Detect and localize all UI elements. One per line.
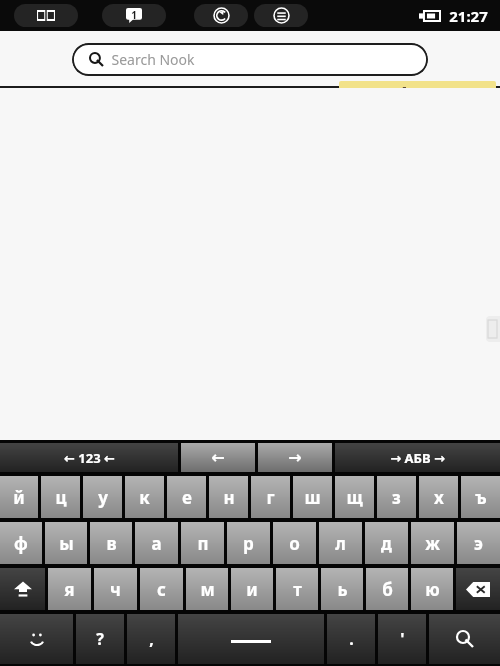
button[interactable]: п [181, 522, 224, 564]
button[interactable]: Notifications [102, 4, 166, 27]
staticText: . [349, 628, 354, 650]
button[interactable]: ← [181, 443, 255, 472]
staticText: 21:27 [449, 6, 488, 26]
button[interactable]: ы [45, 522, 87, 564]
staticText: ga [342, 81, 368, 110]
button[interactable]: Space [178, 614, 324, 664]
staticText: ? [96, 628, 104, 650]
staticText: н [223, 486, 235, 509]
button[interactable]: о [273, 522, 316, 564]
staticText: ы [59, 532, 74, 555]
staticText: в [106, 532, 117, 555]
button[interactable]: е [167, 476, 206, 518]
button[interactable]: . [327, 614, 375, 664]
button[interactable]: → АБВ → [335, 443, 500, 472]
button[interactable]: Emoji [0, 614, 73, 664]
button[interactable]: ъ [461, 476, 500, 518]
button[interactable]: Library [14, 4, 78, 27]
button[interactable]: б [366, 568, 408, 610]
staticText: ь [337, 578, 348, 601]
staticText: э [474, 532, 483, 555]
button[interactable]: ф [0, 522, 42, 564]
staticText: gadget.com [368, 81, 493, 110]
staticText: ъ [475, 486, 487, 509]
staticText: ← 123 ← [64, 449, 115, 467]
staticText: ж [425, 532, 440, 555]
button[interactable]: м [186, 568, 228, 610]
button[interactable]: х [419, 476, 458, 518]
staticText: у [98, 486, 108, 509]
staticText: Search Nook [111, 50, 195, 69]
staticText: я [64, 578, 75, 601]
button[interactable]: Shift [0, 568, 45, 610]
staticText: а [151, 532, 162, 555]
button[interactable]: ч [94, 568, 137, 610]
staticText: ю [425, 578, 440, 601]
button[interactable]: д [365, 522, 408, 564]
button[interactable]: л [319, 522, 362, 564]
staticText: 1 [131, 8, 137, 22]
button[interactable]: я [48, 568, 91, 610]
staticText: о [289, 532, 300, 555]
button[interactable]: ь [321, 568, 363, 610]
button[interactable]: , [127, 614, 175, 664]
staticText: щ [346, 486, 363, 509]
button[interactable]: Menu [254, 4, 308, 27]
button[interactable]: и [231, 568, 273, 610]
staticText: ш [304, 486, 321, 509]
button[interactable]: ← 123 ← [0, 443, 178, 472]
staticText: т [293, 578, 302, 601]
staticText: д [381, 532, 392, 555]
staticText: б [382, 578, 393, 601]
staticText: м [200, 578, 215, 601]
staticText: → АБВ → [390, 449, 445, 467]
button[interactable]: щ [335, 476, 374, 518]
staticText: е [182, 486, 192, 509]
staticText: р [243, 532, 254, 555]
staticText: л [335, 532, 346, 555]
button[interactable]: ц [41, 476, 80, 518]
button[interactable]: э [457, 522, 500, 564]
button[interactable]: Panel handle [486, 316, 500, 342]
button[interactable]: т [276, 568, 318, 610]
staticText: → [288, 448, 302, 467]
button[interactable]: Search [429, 614, 500, 664]
button[interactable]: н [209, 476, 248, 518]
staticText: х [434, 486, 444, 509]
staticText: и [246, 578, 258, 601]
button[interactable]: Search Nook [72, 43, 428, 76]
button[interactable]: у [83, 476, 122, 518]
button[interactable]: с [140, 568, 183, 610]
button[interactable]: ю [411, 568, 453, 610]
staticText: , [149, 628, 154, 650]
button[interactable]: ' [378, 614, 426, 664]
staticText: с [157, 578, 166, 601]
button[interactable]: й [0, 476, 38, 518]
staticText: ← [211, 448, 225, 467]
button[interactable]: ш [293, 476, 332, 518]
button[interactable]: ж [411, 522, 454, 564]
button[interactable]: ? [76, 614, 124, 664]
staticText: к [139, 486, 150, 509]
staticText: ц [55, 486, 67, 509]
button[interactable]: в [90, 522, 132, 564]
staticText: з [392, 486, 401, 509]
staticText: г [266, 486, 275, 509]
button[interactable]: к [125, 476, 164, 518]
button[interactable]: р [227, 522, 270, 564]
staticText: ф [14, 532, 28, 555]
button[interactable]: → [258, 443, 332, 472]
button[interactable]: з [377, 476, 416, 518]
staticText: ч [110, 578, 121, 601]
button[interactable]: Backspace [456, 568, 500, 610]
button[interactable]: г [251, 476, 290, 518]
staticText: й [13, 486, 25, 509]
staticText: п [197, 532, 209, 555]
staticText: ' [400, 628, 405, 650]
button[interactable]: а [135, 522, 178, 564]
button[interactable]: Back [194, 4, 248, 27]
